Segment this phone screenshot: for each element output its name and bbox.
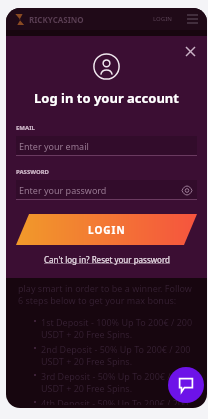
staticText: Log in to your account xyxy=(34,89,179,107)
staticText: PASSWORD xyxy=(16,168,197,176)
staticText: 4th Deposit - 50% Up To 200€ / 200 USDT xyxy=(41,397,195,405)
button[interactable]: Chat xyxy=(168,367,204,403)
staticText: Enter your email xyxy=(19,140,89,152)
button[interactable]: Close xyxy=(181,42,199,60)
button[interactable]: Show password xyxy=(180,183,194,197)
staticText: play smart in order to be a winner. Foll… xyxy=(18,282,195,306)
staticText: 1st Deposit - 100% Up To 200€ / 200 USDT… xyxy=(41,316,195,340)
staticText: LOGIN xyxy=(88,223,126,237)
staticText: 2nd Deposit - 50% Up To 200€ / 200 USDT … xyxy=(41,343,195,367)
staticText: 3rd Deposit - 50% Up To 200€ / 200 USDT … xyxy=(41,370,195,394)
staticText: EMAIL xyxy=(16,124,197,132)
button[interactable]: LOGIN xyxy=(16,214,197,245)
button[interactable]: Can't log in? Reset your password xyxy=(44,254,170,265)
button[interactable]: LOGIN xyxy=(150,12,175,26)
staticText: Can't log in? Reset your password xyxy=(44,254,170,265)
staticText: LOGIN xyxy=(153,15,172,23)
staticText: Enter your password xyxy=(19,184,107,196)
button[interactable]: Menu xyxy=(185,12,199,26)
staticText: RICKYCASINO xyxy=(29,14,84,25)
